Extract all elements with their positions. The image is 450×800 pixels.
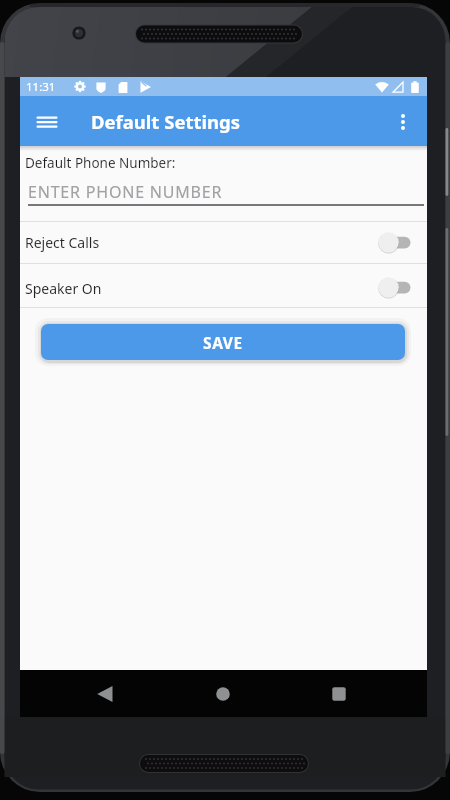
button[interactable]: Reject Calls <box>20 222 427 263</box>
staticText: Reject Calls <box>25 233 100 252</box>
button[interactable] <box>391 110 415 134</box>
staticText: Default Phone Number: <box>25 154 176 172</box>
button[interactable] <box>378 232 412 253</box>
button[interactable]: ENTER PHONE NUMBER <box>20 176 427 207</box>
staticText: SAVE <box>203 332 243 353</box>
staticText: 11:31 <box>26 79 56 95</box>
button[interactable] <box>36 106 58 136</box>
button[interactable]: SAVE <box>41 324 405 360</box>
button[interactable] <box>323 678 355 710</box>
button[interactable]: Speaker On <box>20 267 427 309</box>
staticText: Default Settings <box>91 109 241 134</box>
staticText: ENTER PHONE NUMBER <box>28 181 223 203</box>
button[interactable] <box>378 277 412 298</box>
button[interactable] <box>89 678 121 710</box>
staticText: Speaker On <box>25 279 102 298</box>
button[interactable] <box>207 678 239 710</box>
